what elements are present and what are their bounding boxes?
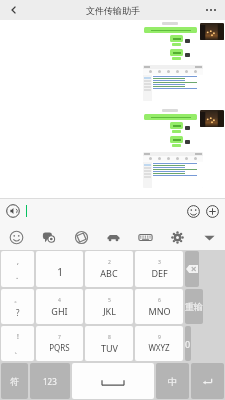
staticText: WXYZ <box>148 342 170 353</box>
button[interactable]: Keyboard layout <box>129 224 161 250</box>
button[interactable]: Emoji keyboard <box>0 224 33 250</box>
button[interactable]: Zero <box>185 326 191 361</box>
staticText: 5 <box>108 297 111 304</box>
staticText: , <box>17 257 19 267</box>
staticText: 。 <box>14 295 21 304</box>
staticText: 7 <box>58 334 61 341</box>
button[interactable]: Symbols <box>1 363 28 399</box>
button[interactable]: Back <box>4 0 24 20</box>
staticText: ! <box>17 332 19 342</box>
staticText: 符 <box>10 376 19 387</box>
button[interactable]: Numbers <box>30 363 70 399</box>
button[interactable]: WXYZ <box>135 326 183 361</box>
staticText: 重输 <box>185 301 203 312</box>
button[interactable]: Chat phrases <box>33 224 65 250</box>
staticText: PQRS <box>49 342 70 353</box>
button[interactable]: Settings <box>161 224 193 250</box>
button[interactable]: More functions <box>204 203 220 219</box>
button[interactable]: DEF <box>135 251 183 287</box>
staticText: 6 <box>158 297 161 304</box>
button[interactable]: Photo <box>200 110 224 127</box>
staticText: 1 <box>57 265 63 279</box>
button[interactable]: Travel <box>97 224 129 250</box>
staticText: 9 <box>158 334 161 341</box>
staticText: 4 <box>58 297 61 304</box>
staticText: ? <box>16 307 20 318</box>
staticText: GHI <box>51 305 68 317</box>
button[interactable]: 1 <box>36 251 83 287</box>
staticText: 2 <box>108 259 111 266</box>
staticText: 中 <box>168 376 177 387</box>
button[interactable]: ! <box>1 326 34 361</box>
button[interactable]: Voice input <box>5 203 21 219</box>
button[interactable]: GHI <box>36 289 83 324</box>
staticText: . <box>16 270 19 281</box>
button[interactable]: Photo <box>200 23 224 40</box>
staticText: 123 <box>43 376 57 387</box>
button[interactable]: Space <box>72 363 154 399</box>
button[interactable]: MNO <box>135 289 183 324</box>
staticText: JKL <box>103 305 116 317</box>
button[interactable]: More options <box>201 0 221 20</box>
staticText: TUV <box>101 342 118 354</box>
button[interactable]: Emoji <box>185 203 201 219</box>
button[interactable]: , <box>1 251 34 287</box>
button[interactable]: TUV <box>85 326 133 361</box>
staticText: 、 <box>14 345 22 355</box>
staticText: ABC <box>100 267 118 279</box>
staticText: MNO <box>148 305 171 317</box>
staticText: DEF <box>151 267 168 279</box>
button[interactable]: PQRS <box>36 326 83 361</box>
staticText: 3 <box>158 259 161 266</box>
staticText: 文件传输助手 <box>86 5 140 16</box>
button[interactable]: ABC <box>85 251 133 287</box>
button[interactable]: Backspace <box>185 251 199 287</box>
button[interactable]: 。 <box>1 289 34 324</box>
staticText: 8 <box>108 334 111 341</box>
button[interactable]: JKL <box>85 289 133 324</box>
staticText: 0 <box>185 338 191 350</box>
button[interactable]: Hide keyboard <box>193 224 225 250</box>
button[interactable]: Camera <box>65 224 97 250</box>
button[interactable]: Language <box>156 363 189 399</box>
button[interactable]: Enter <box>191 363 224 399</box>
button[interactable]: Clear <box>185 289 203 324</box>
